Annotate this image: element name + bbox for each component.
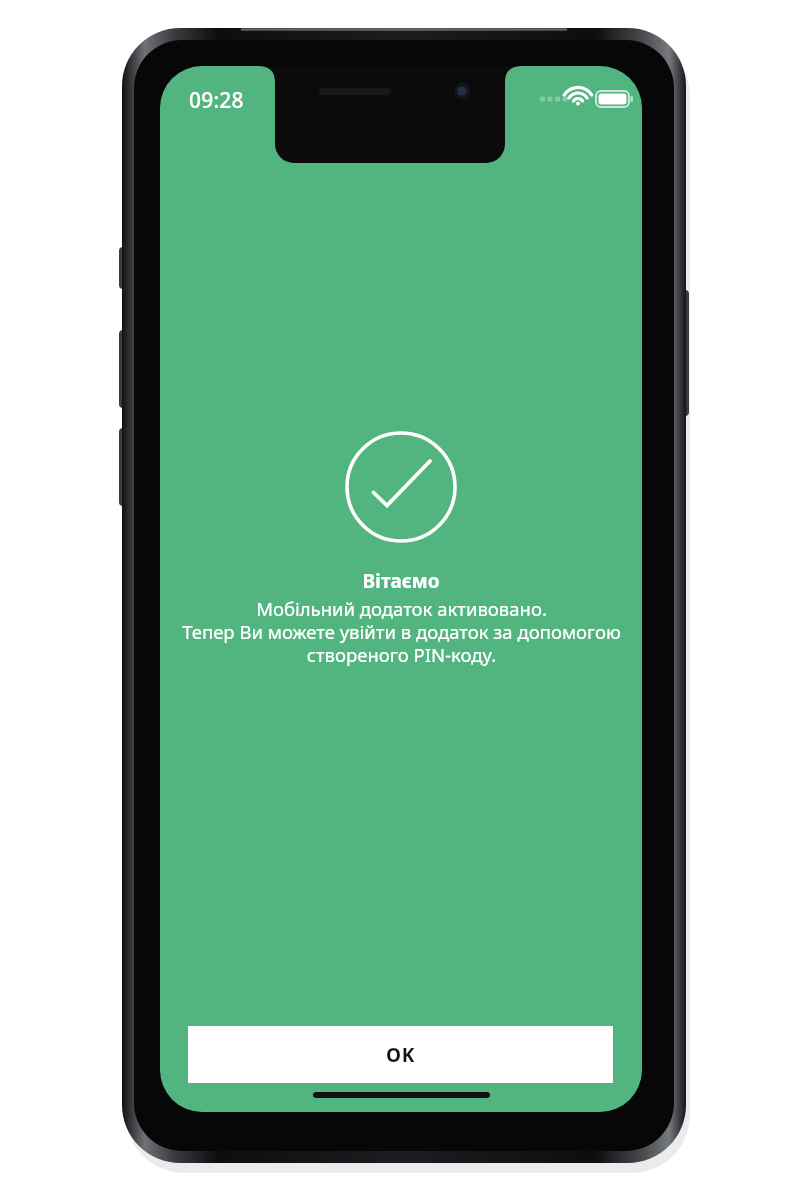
staticText: Вітаємо (362, 568, 440, 594)
button[interactable]: OK (188, 1026, 613, 1083)
staticText: OK (386, 1042, 415, 1068)
staticText: Мобільний додаток активовано. Тепер Ви м… (182, 596, 621, 667)
staticText: 09:28 (189, 86, 244, 115)
